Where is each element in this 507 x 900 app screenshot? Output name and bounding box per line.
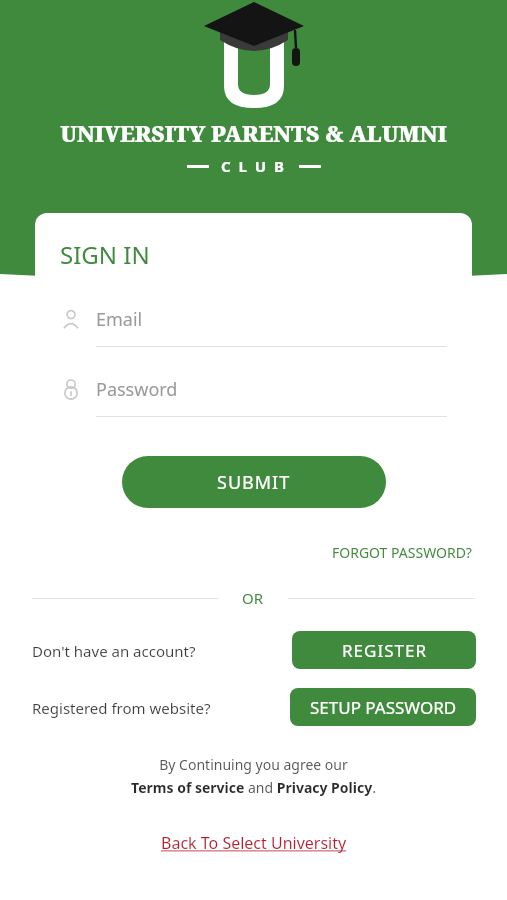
- staticText: C L U B: [221, 156, 287, 176]
- button[interactable]: SUBMIT: [122, 456, 386, 508]
- staticText: SUBMIT: [217, 470, 291, 495]
- staticText: SETUP PASSWORD: [310, 696, 457, 719]
- staticText: UNIVERSITY PARENTS & ALUMNI: [0, 118, 507, 148]
- staticText: Back To Select University: [161, 832, 347, 854]
- staticText: Registered from website?: [32, 698, 211, 718]
- staticText: REGISTER: [342, 639, 427, 662]
- button[interactable]: SETUP PASSWORD: [290, 688, 476, 726]
- staticText: FORGOT PASSWORD?: [332, 543, 472, 562]
- staticText: Email: [96, 307, 143, 332]
- staticText: OR: [242, 588, 264, 608]
- button[interactable]: REGISTER: [292, 631, 476, 669]
- staticText: Password: [96, 377, 178, 402]
- button[interactable]: Back To Select University: [157, 828, 351, 858]
- staticText: Don't have an account?: [32, 641, 196, 661]
- staticText: Terms of service and Privacy Policy.: [0, 778, 507, 797]
- staticText: By Continuing you agree our: [159, 755, 348, 774]
- button[interactable]: FORGOT PASSWORD?: [328, 539, 476, 566]
- staticText: SIGN IN: [60, 238, 150, 271]
